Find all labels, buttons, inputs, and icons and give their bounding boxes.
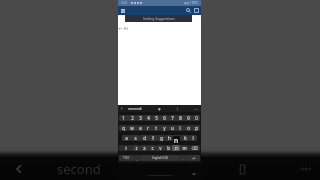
staticText: l [192,135,194,141]
button[interactable]: ⌫ [188,145,200,151]
button[interactable]: Hide keyboard [192,172,196,176]
staticText: 6 [163,115,166,121]
staticText: — [194,106,198,111]
staticText: s [134,135,137,141]
button[interactable]: m [180,145,188,151]
staticText: u [171,125,174,131]
staticText: 1 [122,115,125,121]
staticText: 9:41 [121,1,128,5]
button[interactable]: l [189,135,197,141]
button[interactable]: b [164,145,172,151]
button[interactable]: Navigation menu [120,8,126,14]
staticText: 4 [147,115,150,121]
staticText: j [176,135,178,141]
staticText: b [167,145,170,151]
staticText: i [179,125,181,131]
staticText: f [152,135,154,141]
button[interactable]: 6 [160,115,168,121]
button[interactable]: 4 [144,115,152,121]
button[interactable]: x [140,145,148,151]
button[interactable]: h [165,135,173,141]
button[interactable]: Cast to device [225,158,259,180]
button[interactable]: s [131,135,140,141]
staticText: 0 [195,115,198,121]
staticText: ● [158,107,161,110]
button[interactable]: v [156,145,164,151]
staticText: g [160,135,163,141]
button[interactable]: d [140,135,149,141]
button[interactable]: 8 [176,115,184,121]
button[interactable]: . [179,155,187,161]
button[interactable]: ⇧ [119,145,132,151]
staticText: d [143,135,146,141]
staticText: q [122,125,125,131]
staticText: w [130,125,134,131]
staticText: n [174,136,179,144]
button[interactable]: z [132,145,140,151]
staticText: k [184,135,187,141]
staticText: English (US) [152,156,168,160]
button[interactable]: 7 [168,115,176,121]
button[interactable]: Take screenshot [193,7,200,14]
staticText: 9 [187,115,190,121]
button[interactable]: u [168,125,176,131]
button[interactable]: o [184,125,192,131]
button[interactable]: , [133,155,141,161]
button[interactable]: w [128,125,136,131]
button[interactable]: 5 [152,115,160,121]
button[interactable]: i [176,125,184,131]
staticText: r [147,125,149,131]
button[interactable]: r [144,125,152,131]
staticText: h [168,135,171,141]
button[interactable]: ↵ [187,155,200,161]
button[interactable]: 3 [136,115,144,121]
button[interactable]: c [148,145,156,151]
staticText: Setting Suggestions [143,16,175,21]
staticText: . [183,156,184,161]
staticText: 5 [155,115,158,121]
button[interactable]: Search [185,7,192,14]
button[interactable]: t [152,125,160,131]
staticText: 7 [171,115,174,121]
staticText: y [163,125,166,131]
button[interactable]: y [160,125,168,131]
button[interactable]: q [119,125,128,131]
staticText: x [143,145,146,151]
button[interactable]: j [173,135,181,141]
button[interactable]: second [57,158,101,180]
staticText: c [151,145,154,151]
staticText: second [57,160,101,178]
button[interactable]: 1 [119,115,128,121]
button[interactable]: p [192,125,200,131]
staticText: ← Hi [119,26,129,32]
staticText: 3 [139,115,142,121]
button[interactable]: More options [292,158,320,180]
staticText: a [125,135,128,141]
button[interactable]: a [122,135,131,141]
button[interactable]: n [172,145,180,151]
button[interactable]: 0 [192,115,200,121]
button[interactable]: f [149,135,157,141]
staticText: p [195,125,198,131]
staticText: second [128,106,142,111]
staticText: ↵ [192,156,196,161]
staticText: | [176,106,179,111]
staticText: , [137,156,138,161]
button[interactable]: English (US) [141,155,179,161]
staticText: ⌫ [191,146,198,151]
staticText: ?123 [123,156,129,160]
staticText: o [187,125,190,131]
button[interactable]: ?123 [119,155,133,161]
button[interactable]: 9 [184,115,192,121]
staticText: ‹ [121,105,123,112]
button[interactable]: k [181,135,189,141]
button[interactable]: e [136,125,144,131]
button[interactable]: g [157,135,165,141]
staticText: t [155,125,157,131]
staticText: m [182,145,187,151]
staticText: 8 [179,115,182,121]
staticText: z [135,145,138,151]
button[interactable]: 2 [128,115,136,121]
button[interactable]: Back [0,158,38,180]
staticText: v [159,145,162,151]
